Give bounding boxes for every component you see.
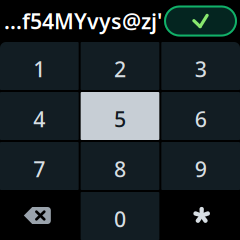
button[interactable]: Delete xyxy=(0,192,79,240)
button[interactable]: 2 xyxy=(81,42,159,90)
button[interactable]: 3 xyxy=(161,42,240,90)
staticText: ...f54MYvys@zj' xyxy=(4,7,162,35)
staticText: 4 xyxy=(33,105,45,133)
button[interactable]: 4 xyxy=(0,92,79,140)
button[interactable]: 8 xyxy=(81,142,159,190)
staticText: 2 xyxy=(114,55,126,83)
button[interactable]: 1 xyxy=(0,42,79,90)
staticText: 1 xyxy=(33,55,45,83)
staticText: 9 xyxy=(195,155,207,183)
staticText: 7 xyxy=(33,155,45,183)
button[interactable]: 9 xyxy=(161,142,240,190)
staticText: 0 xyxy=(114,205,126,233)
button[interactable]: Asterisk xyxy=(161,192,240,240)
staticText: 8 xyxy=(114,155,126,183)
button[interactable]: 5 xyxy=(81,92,159,140)
button[interactable]: 7 xyxy=(0,142,79,190)
staticText: 5 xyxy=(114,105,126,133)
button[interactable]: 6 xyxy=(161,92,240,140)
button[interactable]: Confirm xyxy=(164,5,237,36)
button[interactable]: 0 xyxy=(81,192,159,240)
staticText: 3 xyxy=(195,55,207,83)
staticText: 6 xyxy=(195,105,207,133)
